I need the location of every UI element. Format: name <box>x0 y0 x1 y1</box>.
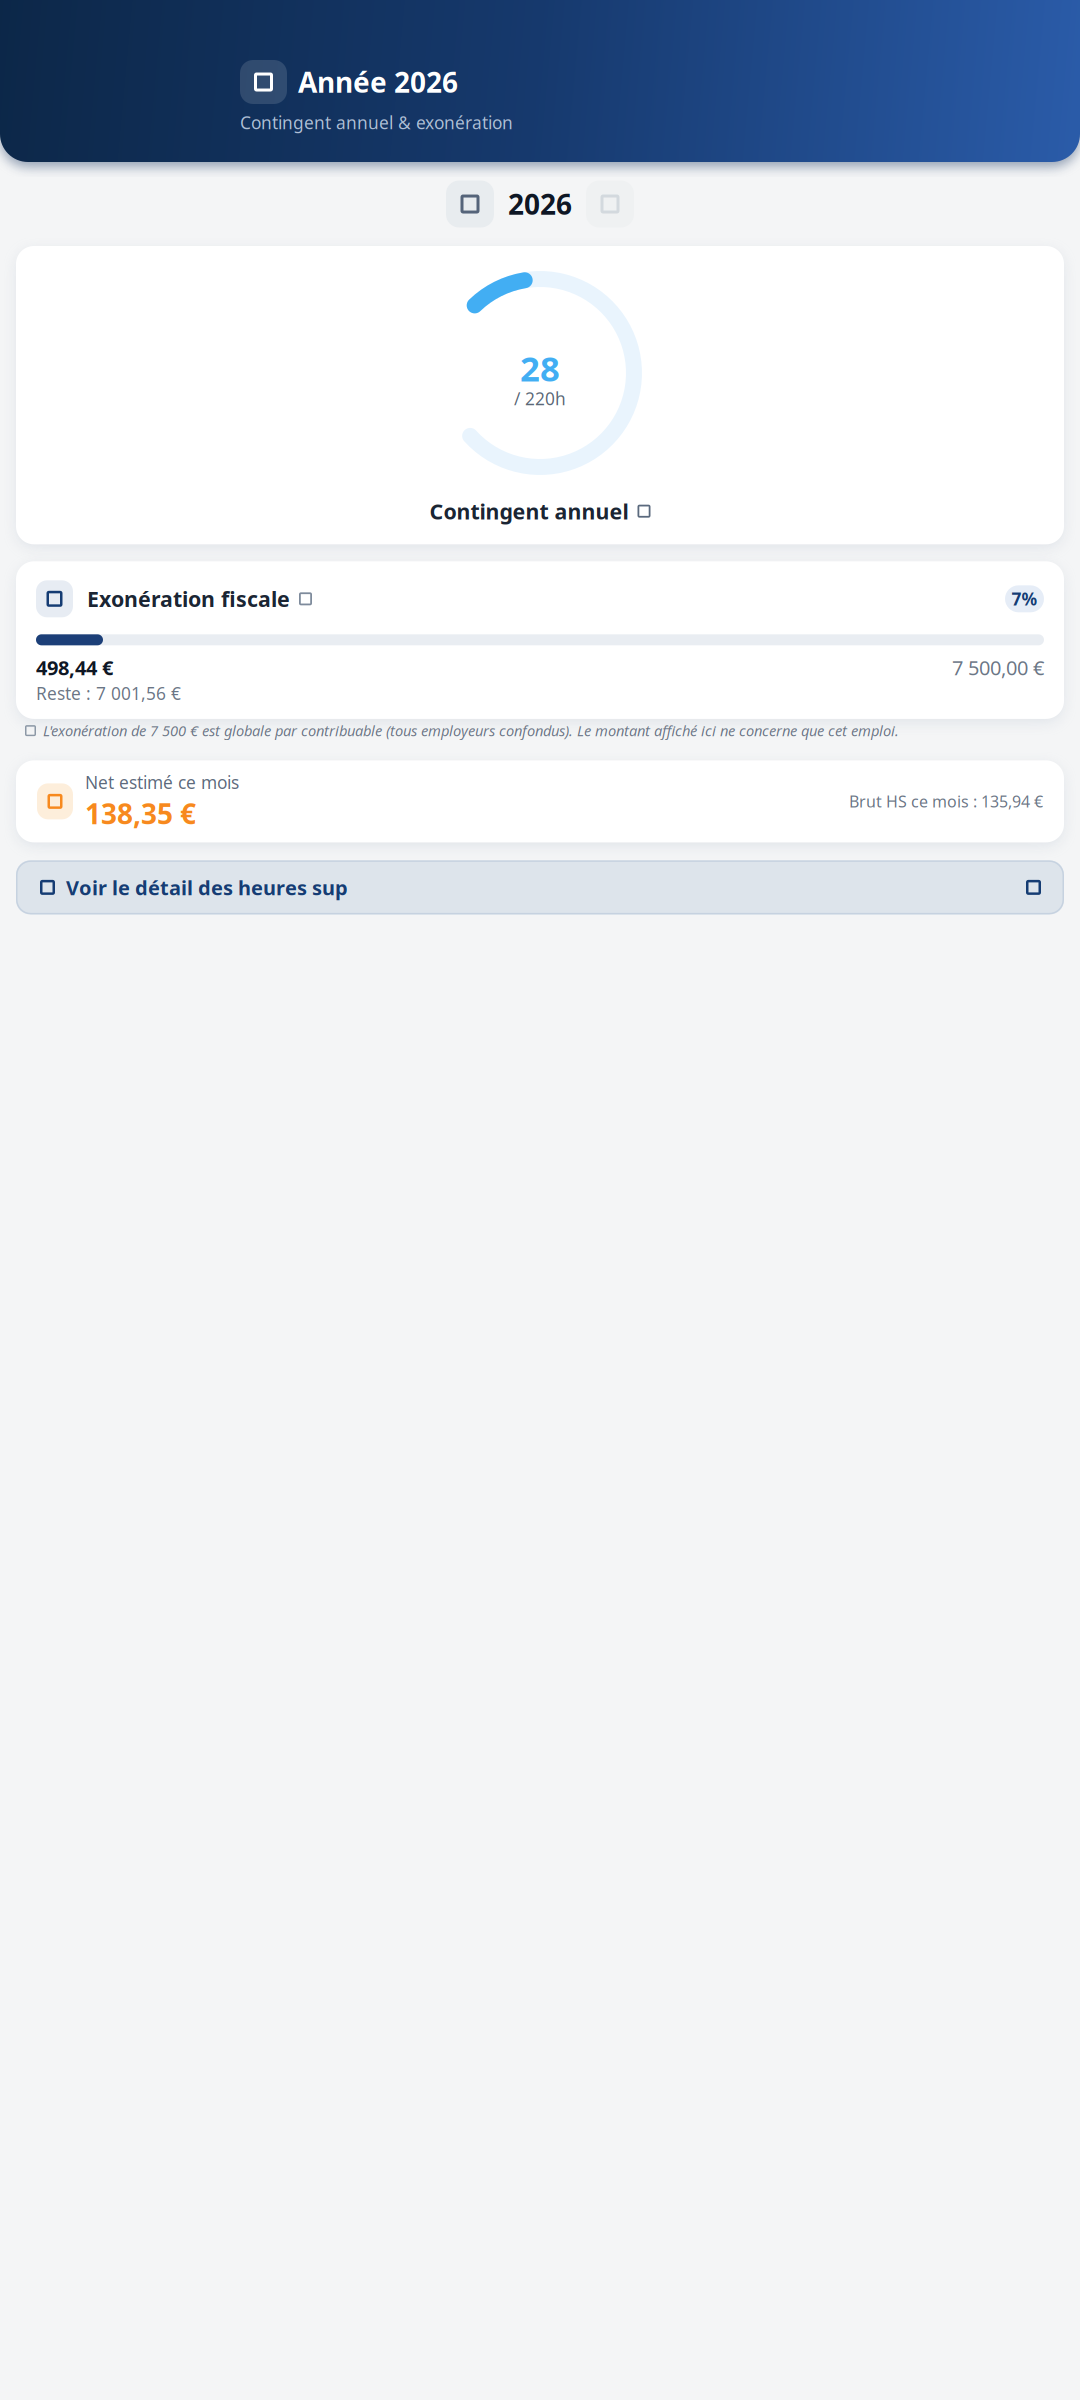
button[interactable]: Année précédente <box>446 180 494 227</box>
button[interactable]: Année suivante <box>586 180 634 227</box>
button[interactable]: Voir le détail des heures sup <box>0 860 1080 914</box>
staticText: 7 500,00 € <box>952 654 1044 681</box>
staticText: Reste : 7 001,56 € <box>36 682 181 705</box>
staticText: Contingent annuel <box>429 497 628 525</box>
staticText: Voir le détail des heures sup <box>66 874 348 901</box>
staticText: Brut HS ce mois : 135,94 € <box>849 791 1043 812</box>
staticText: Année 2026 <box>298 63 458 101</box>
staticText: L'exonération de 7 500 € est globale par… <box>43 721 899 740</box>
staticText: 498,44 € <box>36 654 113 681</box>
staticText: Net estimé ce mois <box>85 771 239 794</box>
staticText: 28 <box>520 345 560 391</box>
staticText: 138,35 € <box>85 795 196 832</box>
staticText: Exonération fiscale <box>87 585 290 613</box>
staticText: 7% <box>1011 587 1037 610</box>
staticText: 2026 <box>508 185 572 223</box>
staticText: / 220h <box>514 387 566 410</box>
staticText: Contingent annuel & exonération <box>240 111 513 134</box>
